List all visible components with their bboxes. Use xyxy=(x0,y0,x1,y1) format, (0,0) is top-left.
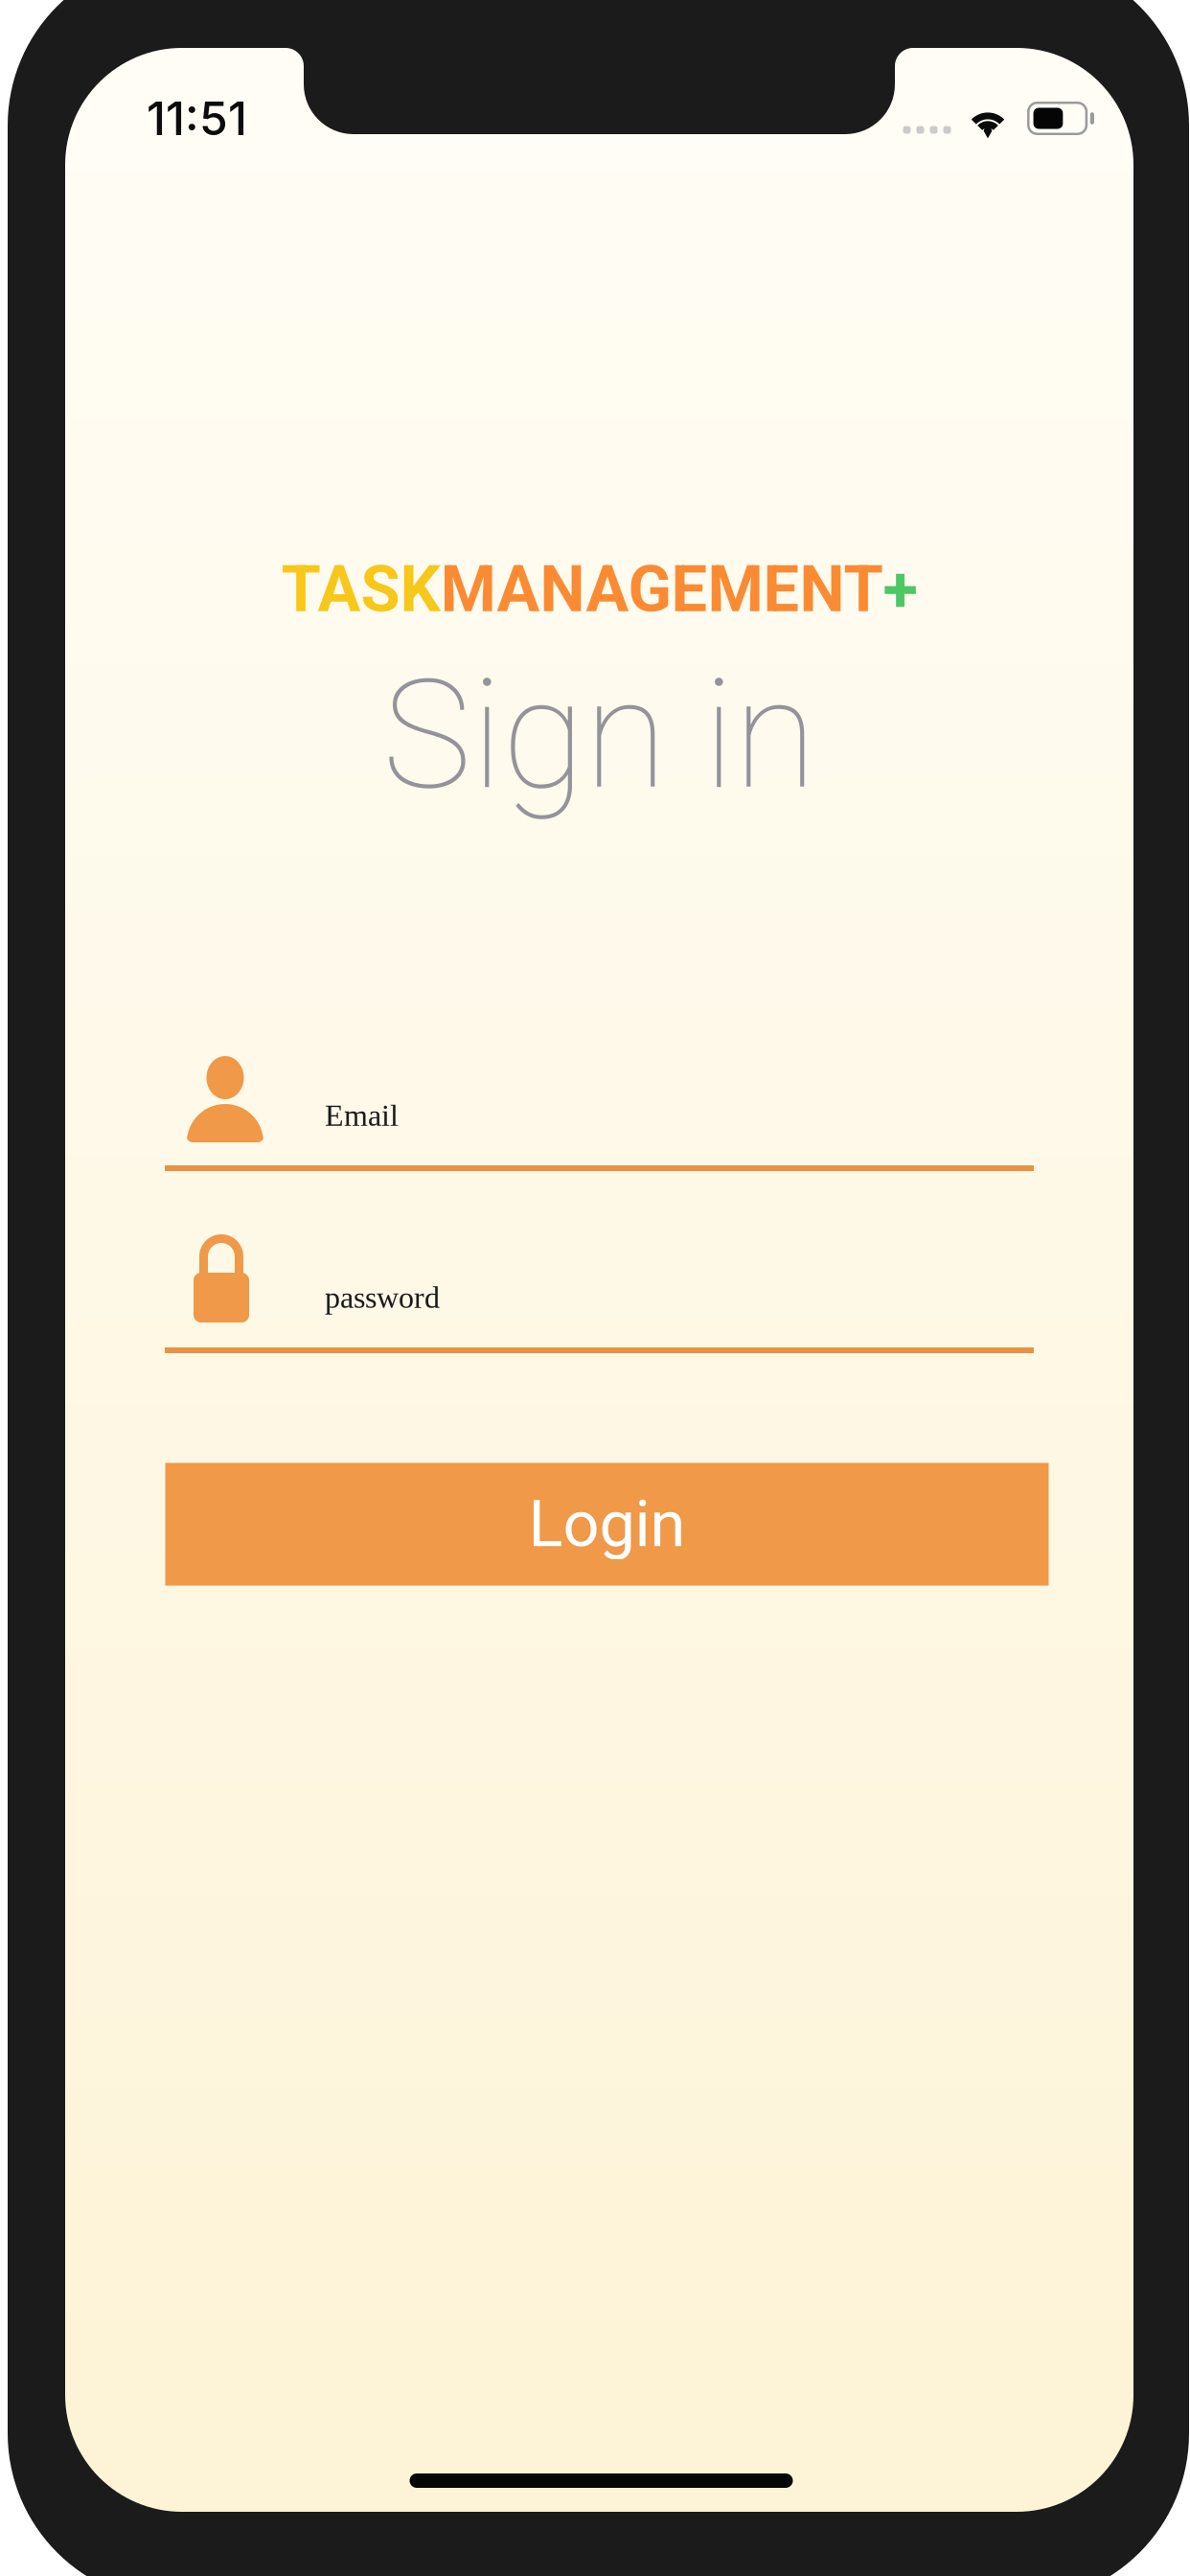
staticText: Sign in xyxy=(382,647,816,823)
staticText: password xyxy=(325,1281,440,1315)
button[interactable]: Login xyxy=(165,1463,1049,1586)
button[interactable]: Email xyxy=(165,1045,1034,1171)
button[interactable]: password xyxy=(165,1227,1034,1353)
staticText: Email xyxy=(325,1099,399,1132)
staticText: MANAGEMENT xyxy=(440,552,883,627)
staticText: + xyxy=(883,552,917,627)
staticText: 11:51 xyxy=(147,91,247,146)
staticText: TASK xyxy=(281,552,440,627)
staticText: Login xyxy=(528,1487,686,1562)
